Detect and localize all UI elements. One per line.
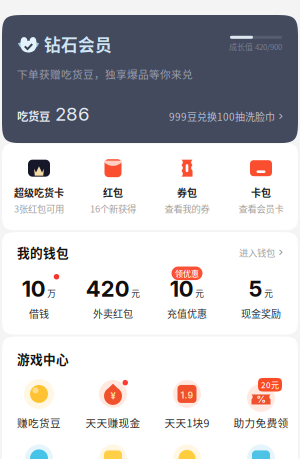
staticText: 5 <box>249 275 263 302</box>
staticText: 10 <box>170 275 194 302</box>
staticText: 成长值 420/900 <box>229 41 282 52</box>
button[interactable]: % <box>224 376 298 430</box>
staticText: 我的钱包 <box>17 243 69 261</box>
staticText: 286 <box>55 103 90 125</box>
staticText: 游戏中心 <box>17 350 69 368</box>
staticText: 助力免费领 <box>233 415 288 430</box>
staticText: 钻石会员 <box>44 32 112 56</box>
staticText: 万 <box>47 287 56 299</box>
staticText: 元 <box>131 287 140 299</box>
staticText: 999豆兑换100抽洗脸巾 <box>169 109 275 124</box>
button[interactable]: 10 <box>150 275 224 321</box>
staticText: 现金奖励 <box>241 306 281 321</box>
staticText: 查看会员卡 <box>238 202 283 215</box>
staticText: 10 <box>22 275 46 302</box>
button[interactable] <box>150 440 224 459</box>
staticText: 卡包 <box>251 185 271 200</box>
button[interactable]: 999豆兑换100抽洗脸巾 <box>169 109 283 124</box>
button[interactable] <box>76 440 150 459</box>
staticText: 借钱 <box>29 306 49 321</box>
button[interactable]: 1.9 <box>150 376 224 430</box>
staticText: 充值优惠 <box>167 306 207 321</box>
staticText: 超级吃货卡 <box>14 185 64 200</box>
staticText: 元 <box>195 287 204 299</box>
button[interactable]: 红包 <box>76 159 150 215</box>
staticText: 券包 <box>177 185 197 200</box>
staticText: 外卖红包 <box>93 306 133 321</box>
staticText: 天天1块9 <box>164 415 209 430</box>
button[interactable]: 超级吃货卡 <box>2 159 76 215</box>
staticText: 16个新获得 <box>90 202 136 215</box>
button[interactable]: 420 <box>76 275 150 321</box>
staticText: 元 <box>264 287 273 299</box>
staticText: 红包 <box>103 185 123 200</box>
button[interactable]: 5 <box>224 275 298 321</box>
button[interactable] <box>224 440 298 459</box>
button[interactable]: 卡包 <box>224 159 298 215</box>
button[interactable]: 券包 <box>150 159 224 215</box>
staticText: ¥ <box>110 390 115 402</box>
button[interactable]: 10 <box>2 275 76 321</box>
staticText: 3张红包可用 <box>14 202 64 215</box>
staticText: 天天赚现金 <box>85 415 140 430</box>
staticText: 查看我的券 <box>164 202 209 215</box>
staticText: 吃货豆 <box>17 107 50 124</box>
button[interactable] <box>2 440 76 459</box>
staticText: 20元 <box>261 379 279 390</box>
staticText: 赚吃货豆 <box>17 415 61 430</box>
button[interactable]: 进入钱包 <box>239 246 283 259</box>
staticText: 下单获赠吃货豆，独享爆品等你来兑 <box>17 66 193 81</box>
staticText: 420 <box>86 275 130 302</box>
button[interactable]: 赚吃货豆 <box>2 376 76 430</box>
staticText: 进入钱包 <box>239 246 275 259</box>
staticText: % <box>256 394 265 405</box>
button[interactable]: ¥ <box>76 376 150 430</box>
staticText: 1.9 <box>180 390 193 401</box>
staticText: 领优惠 <box>175 267 199 279</box>
